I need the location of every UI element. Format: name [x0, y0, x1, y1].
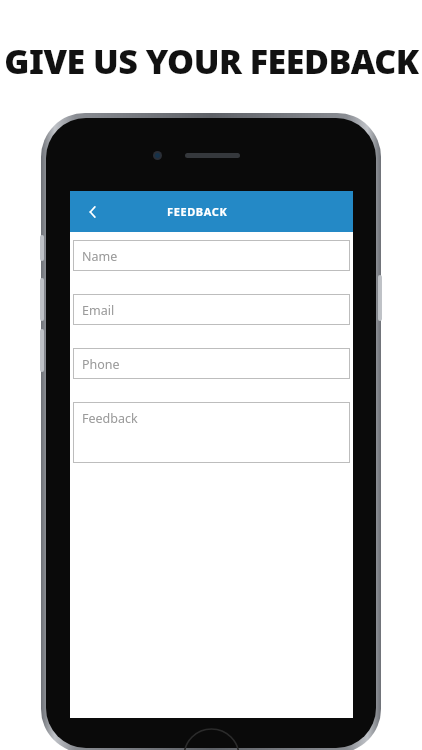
staticText: Name — [82, 248, 118, 265]
staticText: Email — [82, 302, 115, 319]
button[interactable]: Phone — [73, 348, 350, 379]
staticText: GIVE US YOUR FEEDBACK — [4, 38, 419, 84]
button[interactable]: Back — [70, 191, 116, 232]
staticText: Phone — [82, 356, 120, 373]
button[interactable]: Feedback — [73, 402, 350, 463]
button[interactable]: Email — [73, 294, 350, 325]
staticText: FEEDBACK — [167, 204, 228, 219]
staticText: Feedback — [82, 410, 138, 427]
button[interactable]: Name — [73, 240, 350, 271]
